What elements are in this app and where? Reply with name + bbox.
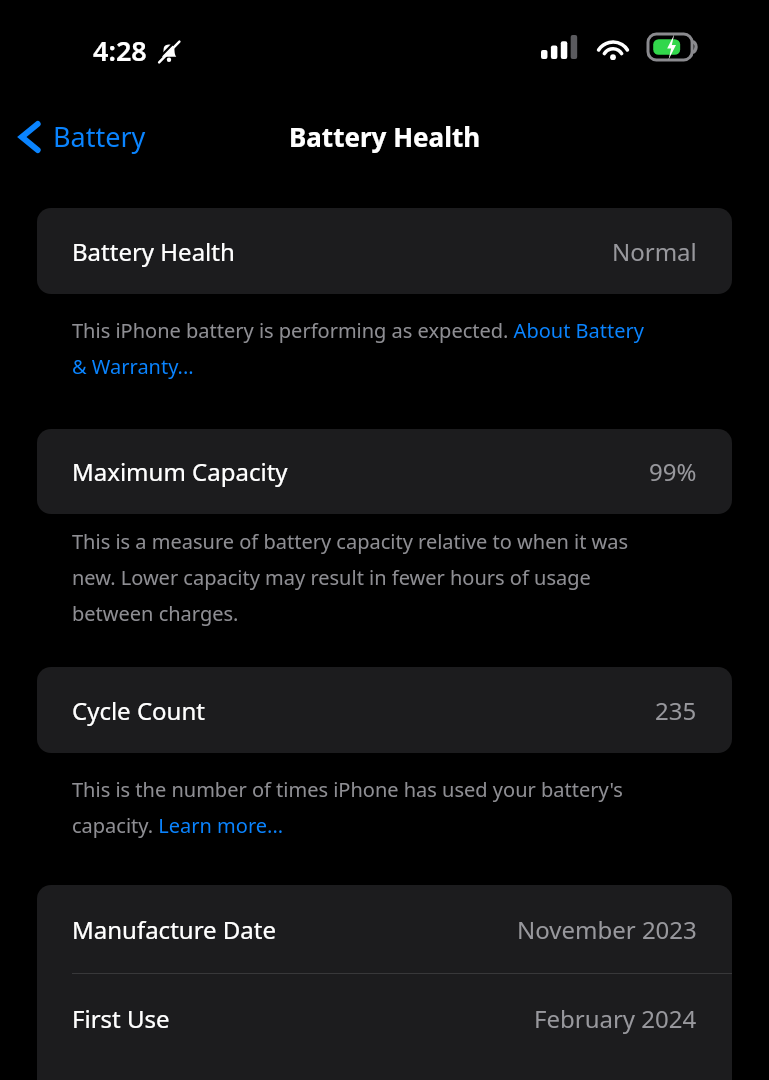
staticText: Battery Health xyxy=(72,235,235,268)
staticText: This is a measure of battery capacity re… xyxy=(72,528,629,555)
staticText: 4:28 xyxy=(93,32,147,69)
staticText: between charges. xyxy=(72,600,239,627)
staticText: Battery Health xyxy=(289,119,481,154)
staticText: 99% xyxy=(649,455,697,488)
staticText: This is the number of times iPhone has u… xyxy=(72,776,623,803)
staticText: First Use xyxy=(72,1002,170,1035)
staticText: new. Lower capacity may result in fewer … xyxy=(72,564,591,591)
staticText: Cycle Count xyxy=(72,694,205,727)
staticText: November 2023 xyxy=(517,913,697,946)
staticText: capacity. Learn more... xyxy=(72,812,284,839)
staticText: & Warranty... xyxy=(72,353,194,380)
button[interactable]: Maximum Capacity xyxy=(37,429,732,514)
button[interactable]: Manufacture Date xyxy=(37,885,732,973)
button[interactable]: First Use xyxy=(37,974,732,1062)
staticText: Normal xyxy=(612,235,697,268)
button[interactable]: Cycle Count xyxy=(37,667,732,753)
staticText: February 2024 xyxy=(534,1002,697,1035)
button[interactable]: Battery Health xyxy=(37,208,732,294)
staticText: Manufacture Date xyxy=(72,913,277,946)
button[interactable]: Battery xyxy=(0,112,158,161)
staticText: This iPhone battery is performing as exp… xyxy=(72,317,644,344)
staticText: 235 xyxy=(655,694,697,727)
staticText: Battery xyxy=(53,118,146,155)
staticText: Maximum Capacity xyxy=(72,455,288,488)
